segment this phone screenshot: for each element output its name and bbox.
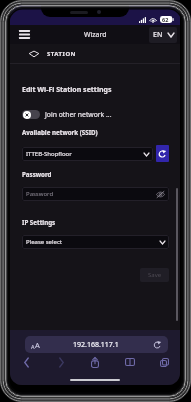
button[interactable]: Password	[22, 187, 169, 201]
staticText: Wizard	[84, 30, 107, 40]
staticText: 62	[162, 16, 169, 23]
staticText: EN	[153, 30, 163, 40]
button[interactable]: Tabs	[156, 354, 172, 370]
staticText: Save	[148, 271, 162, 279]
staticText: Join other network ...	[45, 110, 112, 119]
button[interactable]: EN	[149, 27, 177, 43]
button[interactable]: A	[25, 336, 168, 353]
staticText: ITTEB-Shopfloor	[26, 150, 72, 158]
button[interactable]: ITTEB-Shopfloor	[22, 147, 153, 161]
staticText: IP Settings	[22, 218, 56, 226]
button[interactable]: Forward	[53, 354, 69, 370]
staticText: 192.168.117.1	[73, 340, 119, 350]
button[interactable]: STATION	[25, 48, 81, 60]
staticText: Password	[26, 190, 54, 198]
button[interactable]: Reload page	[153, 340, 162, 349]
button[interactable]: Show password	[155, 189, 166, 200]
staticText: A	[31, 343, 35, 350]
button[interactable]: Back	[18, 354, 34, 370]
staticText: STATION	[47, 50, 77, 58]
staticText: A	[35, 340, 40, 350]
staticText: Please select	[26, 238, 62, 246]
staticText: Edit Wi-Fi Station settings	[22, 85, 112, 95]
button[interactable]: Share	[87, 354, 103, 370]
button[interactable]: Please select	[22, 235, 169, 249]
button[interactable]: Join other network ...	[22, 110, 112, 119]
button[interactable]: Save	[140, 268, 169, 282]
button[interactable]: Menu	[16, 26, 33, 43]
staticText: Available network (SSID)	[22, 128, 98, 136]
staticText: Password	[22, 170, 52, 178]
button[interactable]: Bookmarks	[122, 354, 138, 370]
button[interactable]: Refresh networks	[156, 145, 169, 162]
